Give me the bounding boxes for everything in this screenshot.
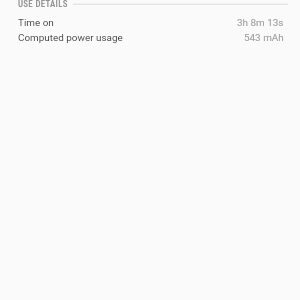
staticText: Time on (18, 17, 54, 29)
staticText: 3h 8m 13s (237, 17, 284, 29)
staticText: Computed power usage (18, 32, 123, 44)
staticText: USE DETAILS (18, 0, 68, 9)
staticText: 543 mAh (244, 32, 284, 44)
button[interactable]: Time on (0, 17, 300, 29)
button[interactable]: Computed power usage (0, 32, 300, 44)
